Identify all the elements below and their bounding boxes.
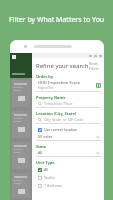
button[interactable]: 1 Bedroom bbox=[36, 182, 101, 189]
button[interactable]: City, State, or ZIP Code bbox=[36, 117, 101, 124]
staticText: All bbox=[38, 150, 43, 155]
button[interactable]: Studio bbox=[36, 174, 101, 181]
button[interactable]: Reset Filters bbox=[89, 61, 101, 71]
staticText: HUD Inspection Score bbox=[38, 80, 80, 86]
staticText: City, State, or ZIP Code bbox=[44, 117, 84, 122]
staticText: Templeton Place bbox=[44, 101, 73, 106]
staticText: Reset Filters bbox=[89, 61, 101, 71]
button[interactable]: HUD Inspection Score bbox=[36, 80, 101, 92]
staticText: Order by bbox=[36, 74, 53, 79]
staticText: Highest first bbox=[38, 86, 54, 90]
staticText: State bbox=[36, 144, 47, 149]
button[interactable]: 50 miles bbox=[36, 134, 101, 141]
staticText: All bbox=[44, 167, 49, 172]
button[interactable] bbox=[12, 142, 30, 169]
staticText: 1 Bedroom bbox=[44, 183, 63, 188]
button[interactable] bbox=[12, 80, 30, 107]
button[interactable]: Use current location bbox=[36, 126, 101, 133]
button[interactable]: Templeton Place bbox=[36, 101, 101, 108]
button[interactable]: All bbox=[36, 150, 101, 157]
button[interactable] bbox=[12, 173, 30, 198]
staticText: Filter by What Matters to You bbox=[9, 15, 105, 25]
staticText: Location (City, State) bbox=[36, 111, 77, 116]
staticText: Unit Type bbox=[36, 160, 55, 165]
button[interactable]: All bbox=[36, 166, 101, 173]
button[interactable] bbox=[12, 111, 30, 138]
staticText: Use current location bbox=[44, 127, 78, 132]
staticText: 50 miles bbox=[38, 134, 53, 139]
staticText: Refine your search bbox=[36, 62, 89, 70]
staticText: Property Name bbox=[36, 95, 66, 100]
staticText: Studio bbox=[44, 175, 55, 180]
